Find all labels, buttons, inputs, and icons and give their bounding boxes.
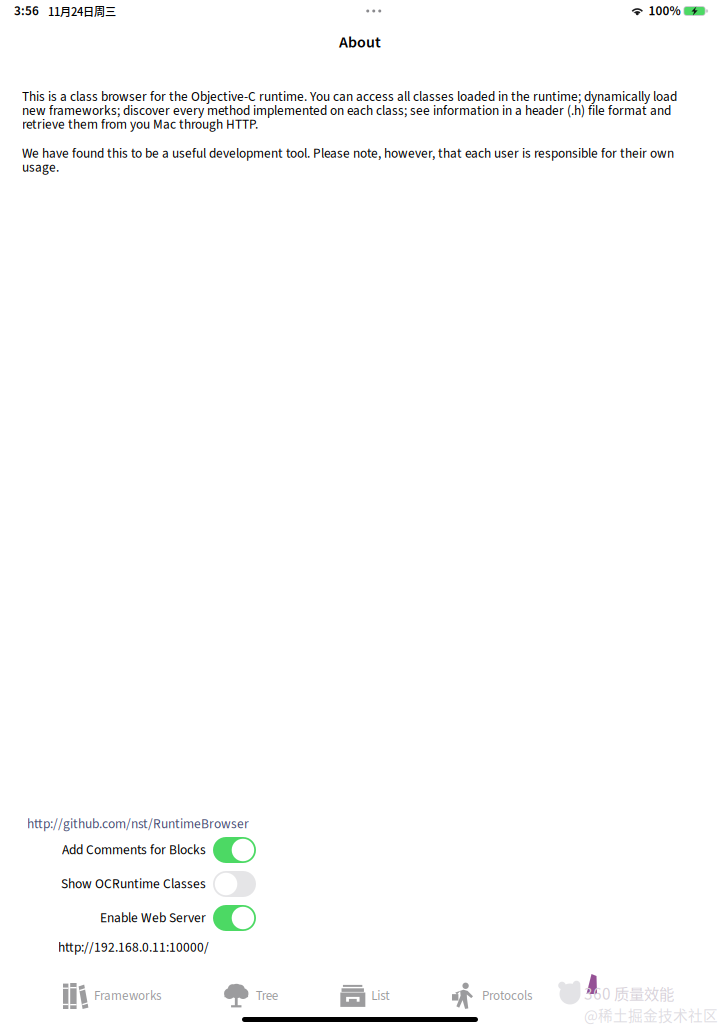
staticText: Tree [256, 987, 278, 1005]
staticText: This is a class browser for the Objectiv… [22, 90, 677, 132]
staticText: About [339, 31, 381, 54]
button[interactable]: http://github.com/nst/RuntimeBrowser [0, 815, 249, 833]
staticText: http://192.168.0.11:10000/ [58, 938, 209, 957]
staticText: http://github.com/nst/RuntimeBrowser [27, 814, 249, 834]
staticText: 3:56 [14, 1, 39, 20]
button[interactable]: Enable Web Server, on [0, 901, 256, 935]
button[interactable]: List [340, 981, 389, 1011]
staticText: @稀土掘金技术社区 [584, 1004, 718, 1025]
staticText: Show OCRuntime Classes [61, 874, 206, 894]
button[interactable]: Show OCRuntime Classes, off [0, 867, 256, 901]
staticText: Enable Web Server [100, 908, 206, 928]
staticText: 100% [648, 1, 680, 20]
button[interactable]: Frameworks [63, 981, 161, 1011]
button[interactable]: Add Comments for Blocks, on [0, 833, 256, 867]
staticText: Add Comments for Blocks [62, 840, 206, 860]
button[interactable]: Protocols [452, 981, 532, 1011]
staticText: Frameworks [94, 987, 161, 1005]
staticText: 11月24日周三 [48, 3, 116, 19]
staticText: We have found this to be a useful develo… [22, 147, 674, 174]
staticText: 360 质量效能 [584, 982, 674, 1004]
staticText: Protocols [482, 987, 532, 1005]
button[interactable]: Tree [224, 981, 278, 1011]
staticText: List [371, 987, 389, 1005]
